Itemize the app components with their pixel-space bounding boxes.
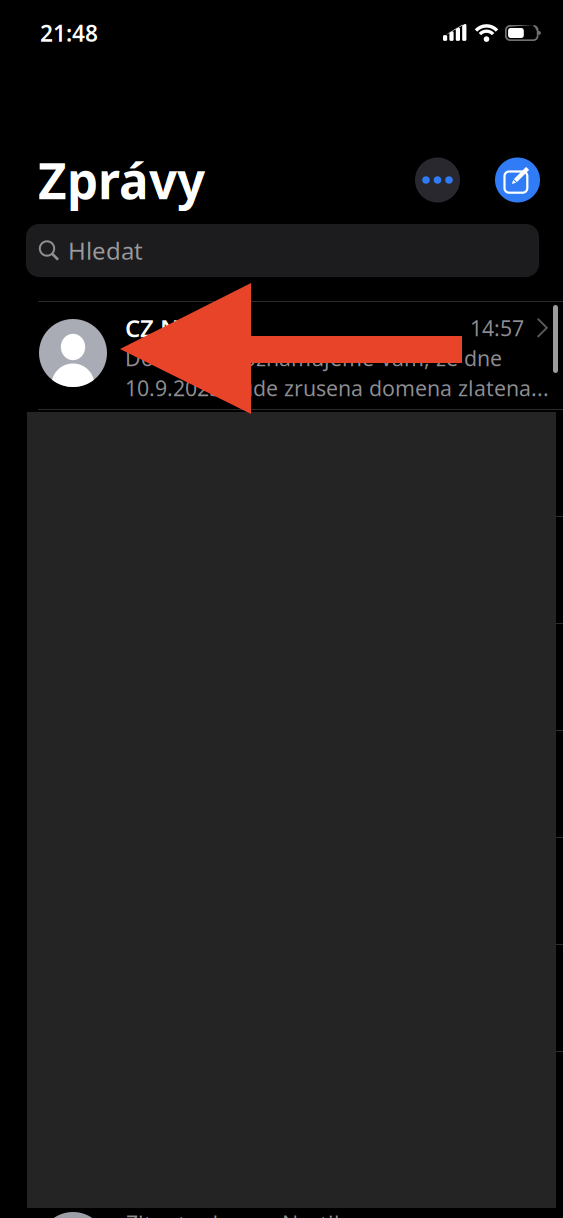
staticText: Hledat	[68, 235, 143, 266]
staticText: CZ NIC	[125, 312, 203, 344]
staticText: 10.9.2025 bude zrusena domena zlatena...	[125, 374, 549, 402]
staticText: Zitra to dovezu Nestiham	[126, 1209, 379, 1218]
staticText: 14:57	[470, 314, 524, 342]
staticText: Dobry den, oznamujeme Vam, ze dne	[125, 344, 502, 372]
button[interactable]: CZ NIC	[0, 302, 563, 409]
button[interactable]: Search	[26, 224, 539, 277]
button[interactable]: More options	[415, 157, 460, 202]
staticText: Zprávy	[38, 147, 205, 213]
staticText: 21:48	[40, 18, 98, 48]
button[interactable]: Compose new message	[495, 157, 540, 202]
